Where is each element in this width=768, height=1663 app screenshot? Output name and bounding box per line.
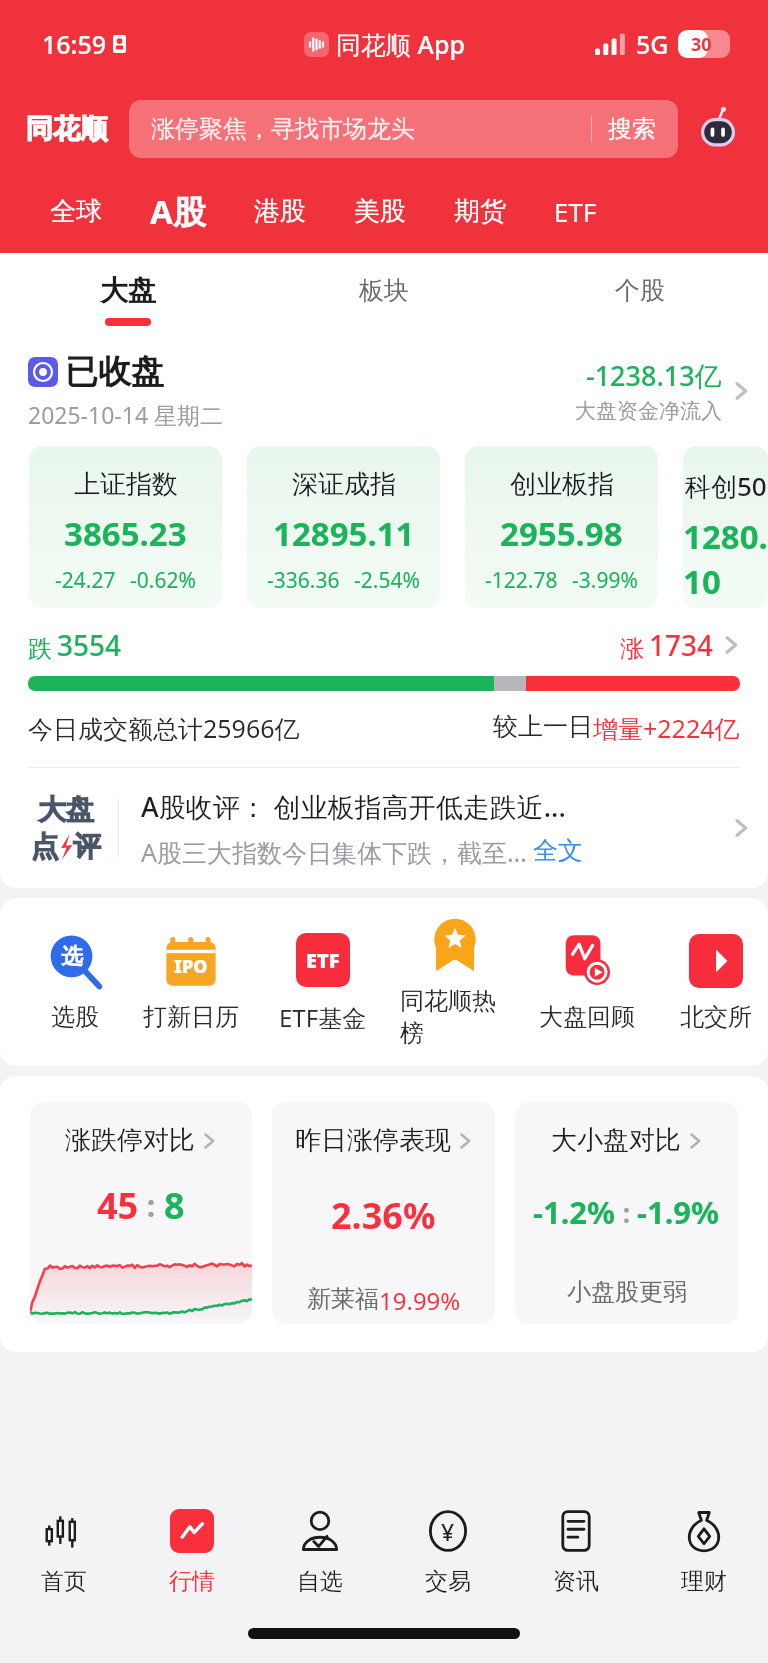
staticText: 行情 <box>169 1567 215 1596</box>
staticText: 评 <box>73 829 101 864</box>
staticText: 港股 <box>254 195 306 228</box>
staticText: -122.78 <box>485 566 558 595</box>
button[interactable]: 期货 <box>430 185 530 238</box>
staticText: 19.99% <box>379 1284 461 1317</box>
staticText: 涨 <box>620 634 644 664</box>
button[interactable]: IPO <box>136 932 246 1032</box>
staticText: 1280.10 <box>683 514 768 604</box>
staticText: 昨日涨停表现 <box>295 1124 451 1157</box>
staticText: : <box>616 1195 637 1230</box>
staticText: 涨停聚焦，寻找市场龙头 <box>151 114 591 144</box>
button[interactable]: 已收盘 <box>0 345 768 430</box>
staticText: 大小盘对比 <box>551 1124 681 1157</box>
button[interactable]: 北交所 <box>664 932 768 1032</box>
button[interactable]: 深证成指 <box>247 446 440 608</box>
staticText: -0.62% <box>130 566 196 595</box>
staticText: 选股 <box>51 1002 99 1032</box>
staticText: A股 <box>150 189 206 234</box>
button[interactable]: 个股 <box>512 253 768 345</box>
staticText: 较上一日 <box>493 711 593 742</box>
staticText: IPO <box>174 954 208 979</box>
staticText: 45 <box>97 1181 139 1230</box>
staticText: 大盘资金净流入 <box>575 398 722 424</box>
staticText: 2955.98 <box>500 511 623 556</box>
staticText: 3554 <box>57 626 122 664</box>
staticText: 板块 <box>359 275 409 306</box>
staticText: 8 <box>164 1181 185 1230</box>
staticText: 交易 <box>425 1567 471 1596</box>
button[interactable]: 涨跌停对比 <box>30 1102 252 1324</box>
staticText: 1734 <box>649 626 714 664</box>
button[interactable]: 跌 <box>0 626 768 691</box>
staticText: 2025-10-14 星期二 <box>28 399 224 430</box>
staticText: 期货 <box>454 195 506 228</box>
button[interactable]: ETF <box>530 184 621 239</box>
staticText: : <box>139 1185 164 1226</box>
button[interactable]: 大盘 <box>0 768 768 888</box>
staticText: -336.36 <box>267 566 340 595</box>
staticText: 全球 <box>50 195 102 228</box>
staticText: 上证指数 <box>74 468 178 501</box>
staticText: 大盘回顾 <box>539 1002 635 1032</box>
button[interactable]: 行情 <box>128 1485 256 1615</box>
staticText: 大盘 <box>100 273 156 308</box>
button[interactable]: 自选 <box>256 1485 384 1615</box>
button[interactable]: ETF <box>268 931 378 1034</box>
staticText: 北交所 <box>680 1002 752 1032</box>
staticText: 新莱福 <box>307 1284 379 1314</box>
staticText: 大盘 <box>38 792 94 827</box>
staticText: 增量+2224亿 <box>593 711 740 745</box>
staticText: 30 <box>691 32 712 57</box>
staticText: -1238.13亿 <box>586 357 722 394</box>
staticText: 个股 <box>615 275 665 306</box>
button[interactable]: 大盘回顾 <box>532 932 642 1032</box>
staticText: 自选 <box>297 1567 343 1596</box>
staticText: 涨跌停对比 <box>65 1124 195 1157</box>
staticText: ETF <box>554 194 597 229</box>
button[interactable]: 美股 <box>330 185 430 238</box>
staticText: ¥ <box>441 1516 455 1547</box>
staticText: ETF基金 <box>279 1001 367 1034</box>
button[interactable]: 大盘 <box>0 253 256 345</box>
button[interactable]: 理财 <box>640 1485 768 1615</box>
staticText: -24.27 <box>55 566 116 595</box>
button[interactable]: 创业板指 <box>465 446 658 608</box>
staticText: ETF <box>306 947 340 974</box>
button[interactable]: 同花顺 <box>26 112 107 146</box>
staticText: 跌 <box>28 634 52 664</box>
button[interactable]: A股 <box>126 179 230 244</box>
staticText: 科创50 <box>685 468 767 504</box>
button[interactable]: 全球 <box>26 185 126 238</box>
button[interactable]: 资讯 <box>512 1485 640 1615</box>
button[interactable]: 大小盘对比 <box>515 1102 738 1324</box>
staticText: 全文 <box>533 835 583 866</box>
staticText: -1.2% <box>533 1191 616 1233</box>
staticText: 创业板指 <box>510 468 614 501</box>
staticText: A股三大指数今日集体下跌，截至… <box>141 835 527 869</box>
button[interactable]: 上证指数 <box>29 446 222 608</box>
staticText: 理财 <box>681 1567 727 1596</box>
staticText: 同花顺热榜 <box>400 986 510 1048</box>
button[interactable]: 涨停聚焦，寻找市场龙头 <box>129 100 678 158</box>
staticText: 资讯 <box>553 1567 599 1596</box>
button[interactable]: 选 <box>36 932 114 1032</box>
staticText: 打新日历 <box>143 1002 239 1032</box>
button[interactable]: 板块 <box>256 253 512 345</box>
staticText: A股收评： 创业板指高开低走跌近... <box>141 788 566 825</box>
staticText: 12895.11 <box>273 511 415 556</box>
staticText: 5G <box>636 27 669 61</box>
staticText: -3.99% <box>572 566 638 595</box>
staticText: 16:59 <box>42 27 107 61</box>
button[interactable]: 同花顺热榜 <box>400 916 510 1048</box>
staticText: 3865.23 <box>64 511 187 556</box>
button[interactable]: 港股 <box>230 185 330 238</box>
button[interactable]: 科创50 <box>683 446 768 608</box>
button[interactable]: ¥ <box>384 1485 512 1615</box>
button[interactable]: 首页 <box>0 1485 128 1615</box>
staticText: 选 <box>61 943 83 971</box>
staticText: -1.9% <box>637 1191 720 1233</box>
button[interactable]: 昨日涨停表现 <box>272 1102 495 1324</box>
staticText: 深证成指 <box>292 468 396 501</box>
staticText: 美股 <box>354 195 406 228</box>
button[interactable]: AI 助手 <box>694 105 742 153</box>
